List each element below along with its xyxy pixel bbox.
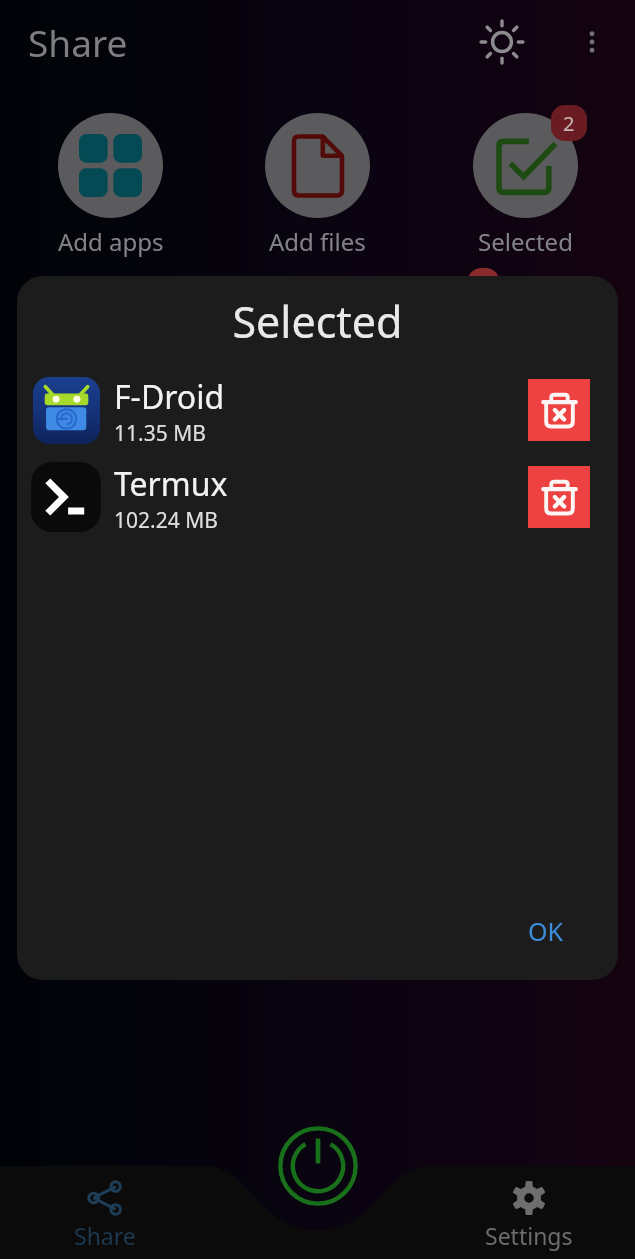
staticText: Add files xyxy=(269,225,366,258)
button[interactable]: Share xyxy=(45,1179,165,1251)
staticText: Share xyxy=(74,1220,136,1251)
button[interactable]: Add files xyxy=(220,113,415,258)
staticText: Settings xyxy=(485,1220,573,1251)
staticText: Add apps xyxy=(58,225,164,258)
staticText: OK xyxy=(528,914,564,948)
staticText: Selected xyxy=(17,292,618,351)
button[interactable]: Settings xyxy=(469,1179,589,1251)
button[interactable]: Add apps xyxy=(13,113,208,258)
button[interactable]: More options xyxy=(570,20,614,64)
staticText: 11.35 MB xyxy=(114,419,206,445)
staticText: Termux xyxy=(114,462,228,506)
button[interactable]: Selected xyxy=(428,113,623,258)
staticText: 102.24 MB xyxy=(114,506,218,532)
button[interactable]: Power xyxy=(274,1122,361,1209)
staticText: Share xyxy=(28,17,128,67)
button[interactable]: Remove xyxy=(528,379,590,441)
button[interactable]: OK xyxy=(514,904,578,958)
staticText: F-Droid xyxy=(114,375,225,419)
staticText: Selected xyxy=(478,225,573,258)
button[interactable]: Brightness xyxy=(479,19,525,65)
staticText: 2 xyxy=(563,110,575,137)
button[interactable]: Remove xyxy=(528,466,590,528)
